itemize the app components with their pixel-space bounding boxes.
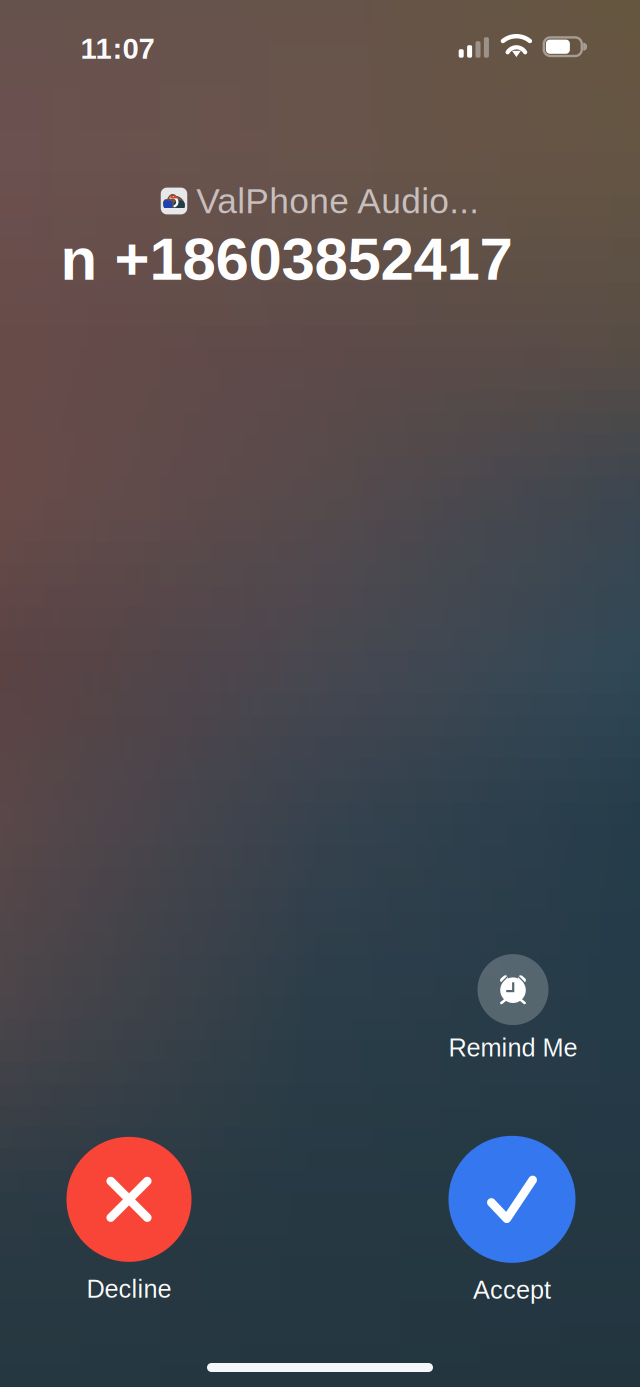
staticText: Remind Me [448,1034,577,1062]
button[interactable]: Accept [448,1136,575,1304]
button[interactable]: Decline [66,1137,191,1303]
staticText: 11:07 [80,32,154,65]
staticText: n +18603852417 [60,225,512,292]
button[interactable]: Remind Me [448,954,577,1062]
staticText: Accept [473,1276,551,1304]
staticText: Decline [86,1275,171,1303]
staticText: ValPhone Audio... [196,181,479,221]
